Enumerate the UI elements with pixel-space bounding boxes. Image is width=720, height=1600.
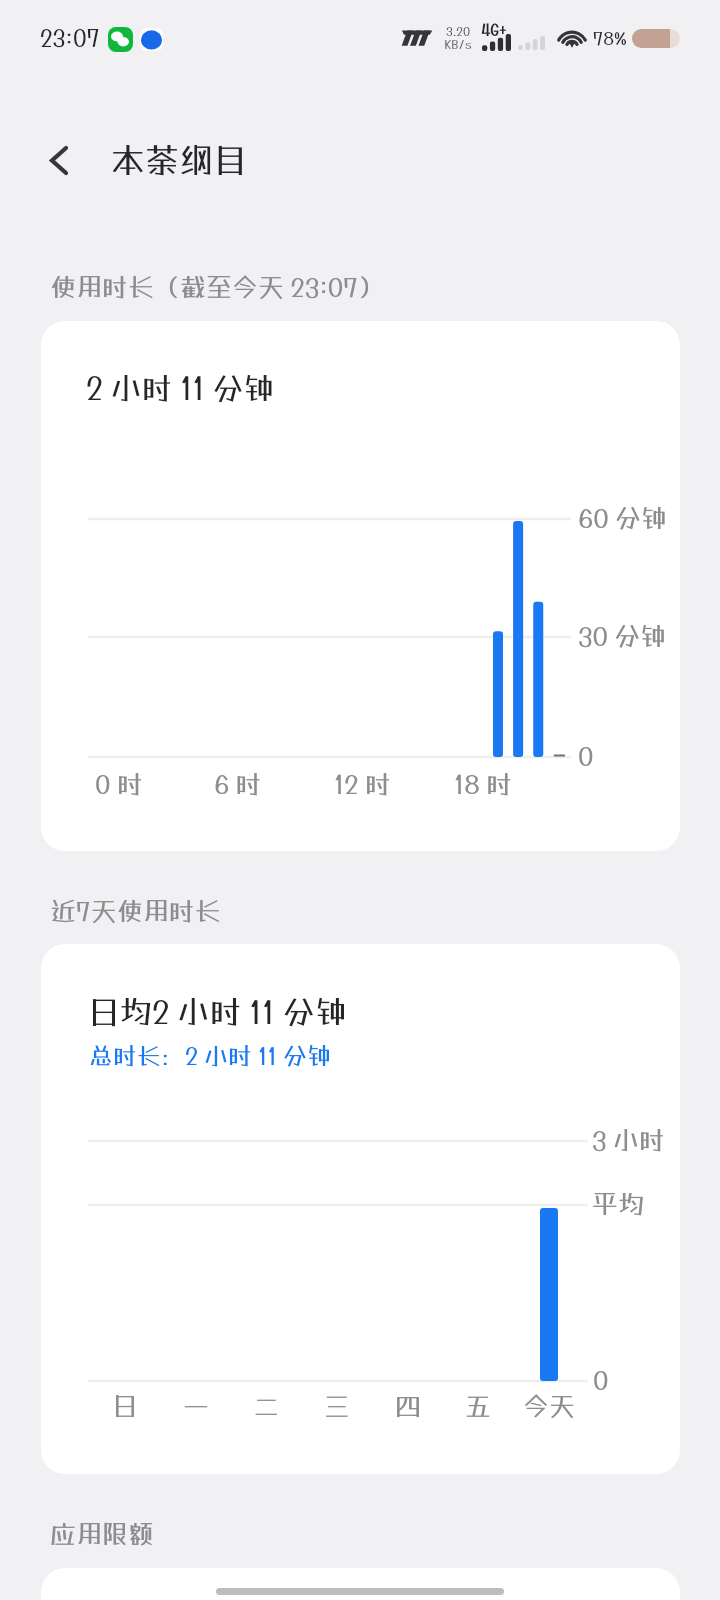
button[interactable]: Baidu notification — [140, 28, 163, 51]
staticText: 平均 — [592, 1188, 645, 1219]
staticText: 60 分钟 — [578, 502, 668, 533]
staticText: 23:07 — [40, 24, 100, 51]
staticText: 使用时长（截至今天 23:07） — [50, 271, 384, 302]
button[interactable]: 2 小时 11 分钟 — [41, 321, 680, 851]
staticText: 0 — [593, 1364, 609, 1395]
staticText: 本荼纲目 — [111, 140, 247, 180]
staticText: 0 — [578, 740, 594, 771]
staticText: 日均2 小时 11 分钟 — [88, 993, 347, 1031]
staticText: 3 小时 — [592, 1124, 665, 1155]
staticText: 五 — [463, 1390, 493, 1421]
staticText: 总时长：2 小时 11 分钟 — [89, 1041, 332, 1069]
staticText: 12 时 — [334, 768, 391, 799]
staticText: 3.20 KB/s — [444, 24, 472, 52]
staticText: 18 时 — [454, 768, 513, 799]
staticText: 78% — [593, 27, 627, 48]
staticText: 今天 — [519, 1390, 579, 1421]
button[interactable]: WeChat notification — [108, 27, 133, 52]
staticText: 四 — [393, 1390, 423, 1421]
staticText: 6 时 — [214, 768, 262, 799]
staticText: 一 — [181, 1390, 211, 1421]
staticText: 日 — [110, 1390, 140, 1421]
staticText: 30 分钟 — [578, 620, 667, 651]
staticText: 0 时 — [95, 768, 143, 799]
staticText: 4G+ — [481, 21, 507, 39]
staticText: 三 — [322, 1390, 352, 1421]
button[interactable]: Back — [23, 124, 95, 196]
staticText: 2 小时 11 分钟 — [86, 370, 275, 407]
staticText: 近7天使用时长 — [50, 895, 221, 926]
button[interactable] — [41, 1568, 680, 1600]
staticText: 应用限额 — [50, 1518, 155, 1549]
button[interactable]: 日均2 小时 11 分钟 — [41, 944, 680, 1474]
staticText: 二 — [251, 1390, 281, 1421]
